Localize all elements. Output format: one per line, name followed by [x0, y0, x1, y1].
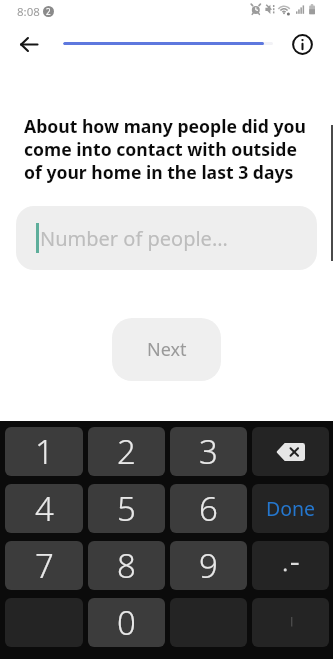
staticText: 3: [199, 429, 218, 474]
staticText: Done: [266, 495, 316, 522]
staticText: 1: [35, 429, 54, 474]
staticText: 6: [199, 486, 218, 531]
button[interactable]: Number of people…: [16, 206, 317, 270]
staticText: 8: [117, 543, 136, 588]
staticText: Next: [147, 337, 187, 362]
staticText: 2: [46, 6, 51, 17]
button[interactable]: 8: [88, 541, 165, 590]
button[interactable]: Backspace: [252, 427, 329, 476]
button[interactable]: 2: [88, 427, 165, 476]
staticText: 2: [117, 429, 136, 474]
button[interactable]: 1: [5, 427, 83, 476]
staticText: About how many people did you come into …: [24, 114, 319, 184]
staticText: 9: [199, 543, 218, 588]
staticText: 0: [117, 600, 136, 645]
button[interactable]: Information: [281, 23, 324, 66]
button[interactable]: 6: [170, 484, 247, 533]
button[interactable]: 5: [88, 484, 165, 533]
staticText: 7: [35, 543, 54, 588]
staticText: 8:08: [17, 4, 40, 20]
button[interactable]: 3: [170, 427, 247, 476]
button[interactable]: 7: [5, 541, 83, 590]
button[interactable]: Symbols: [252, 541, 329, 590]
button[interactable]: 4: [5, 484, 83, 533]
staticText: 4: [35, 486, 54, 531]
staticText: 5: [117, 486, 136, 531]
button[interactable]: Back: [7, 22, 51, 66]
staticText: Number of people…: [40, 225, 228, 252]
button[interactable]: Next: [112, 318, 221, 381]
button[interactable]: Done: [252, 484, 329, 533]
button[interactable]: 0: [88, 598, 165, 647]
button[interactable]: 9: [170, 541, 247, 590]
